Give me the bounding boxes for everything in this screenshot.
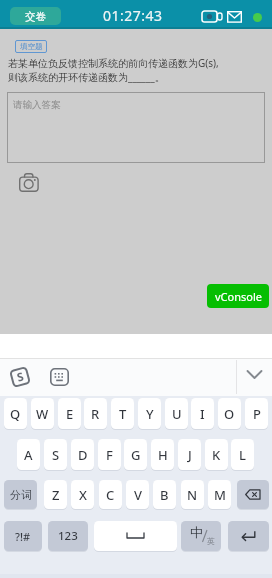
button[interactable]: O (218, 398, 241, 429)
staticText: V (134, 486, 142, 504)
button[interactable] (50, 368, 69, 386)
staticText: B (160, 486, 169, 504)
button[interactable]: D (71, 439, 94, 470)
button[interactable]: I (191, 398, 214, 429)
staticText: 英 (207, 536, 215, 546)
button[interactable] (237, 480, 269, 509)
button[interactable]: C (99, 480, 122, 509)
staticText: 则该系统的开环传递函数为______。 (8, 70, 165, 84)
button[interactable]: H (151, 439, 174, 470)
staticText: W (36, 405, 49, 423)
button[interactable]: 123 (48, 521, 88, 551)
button[interactable]: U (165, 398, 188, 429)
button[interactable]: ?!# (4, 521, 42, 551)
staticText: Q (10, 405, 21, 423)
button[interactable] (228, 521, 269, 551)
staticText: L (239, 446, 246, 464)
button[interactable]: A (17, 439, 40, 470)
button[interactable] (245, 368, 264, 382)
staticText: U (172, 405, 182, 423)
button[interactable]: 中 (181, 521, 221, 551)
button[interactable]: Y (138, 398, 161, 429)
staticText: Z (52, 486, 60, 504)
button[interactable]: R (84, 398, 107, 429)
button[interactable]: L (231, 439, 254, 470)
staticText: S (52, 446, 60, 464)
staticText: S (15, 368, 26, 385)
staticText: 01:27:43 (103, 6, 163, 25)
staticText: 中 (190, 524, 203, 540)
button[interactable]: S (44, 439, 67, 470)
button[interactable]: S (9, 366, 31, 388)
button[interactable]: Q (4, 398, 27, 429)
staticText: F (106, 446, 113, 464)
button[interactable]: E (58, 398, 81, 429)
button[interactable]: V (126, 480, 149, 509)
button[interactable]: X (71, 480, 94, 509)
staticText: D (78, 446, 88, 464)
staticText: I (200, 405, 205, 423)
button[interactable]: 请输入答案 (7, 92, 265, 163)
staticText: 123 (58, 528, 78, 544)
button[interactable]: G (124, 439, 147, 470)
button[interactable]: W (31, 398, 54, 429)
button[interactable]: Z (44, 480, 67, 509)
button[interactable]: B (153, 480, 176, 509)
button[interactable]: J (178, 439, 201, 470)
button[interactable]: vConsole (207, 284, 269, 308)
staticText: E (66, 405, 74, 423)
staticText: 交卷 (25, 10, 46, 23)
staticText: A (24, 446, 33, 464)
staticText: G (131, 446, 141, 464)
button[interactable]: K (205, 439, 228, 470)
button[interactable]: P (245, 398, 268, 429)
staticText: Y (146, 405, 154, 423)
button[interactable]: 交卷 (10, 7, 61, 25)
staticText: T (119, 405, 127, 423)
button[interactable] (94, 521, 177, 551)
staticText: K (212, 446, 221, 464)
staticText: 分词 (10, 488, 32, 502)
staticText: H (158, 446, 168, 464)
staticText: 填空题 (20, 42, 43, 51)
button[interactable]: F (98, 439, 121, 470)
staticText: 请输入答案 (13, 99, 61, 111)
staticText: 若某单位负反馈控制系统的前向传递函数为G(s), (8, 56, 219, 70)
button[interactable] (19, 173, 39, 192)
button[interactable]: N (181, 480, 204, 509)
button[interactable]: 分词 (4, 480, 37, 509)
staticText: R (91, 405, 100, 423)
button[interactable]: T (111, 398, 134, 429)
staticText: M (214, 486, 226, 504)
staticText: J (188, 446, 192, 464)
staticText: P (253, 405, 261, 423)
button[interactable]: M (208, 480, 231, 509)
staticText: N (187, 486, 198, 504)
staticText: X (79, 486, 87, 504)
staticText: O (224, 405, 235, 423)
staticText: C (106, 486, 115, 504)
staticText: vConsole (215, 289, 262, 304)
staticText: ?!# (15, 529, 31, 544)
